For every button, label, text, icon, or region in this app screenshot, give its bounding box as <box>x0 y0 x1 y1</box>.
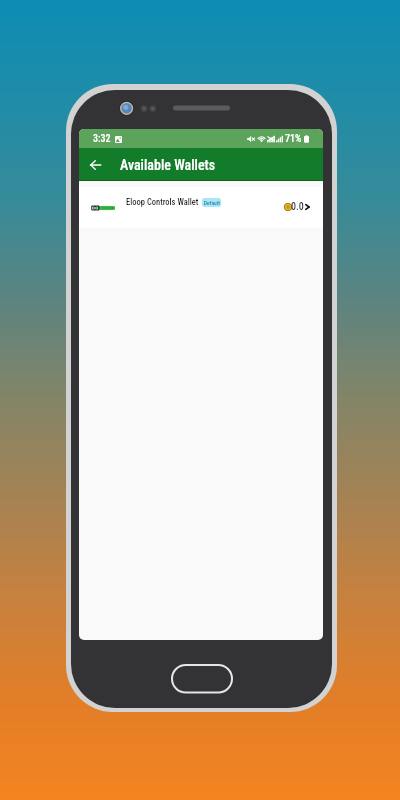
staticText: 0.0 <box>291 201 304 213</box>
staticText: Default <box>204 200 220 206</box>
staticText: Eloop Controls Wallet <box>126 197 199 207</box>
staticText: Available Wallets <box>120 157 216 173</box>
staticText: 71% <box>285 133 302 145</box>
button[interactable]: Eloop Controls Wallet <box>79 187 323 228</box>
button[interactable]: Back <box>84 154 106 176</box>
staticText: 3:32 <box>93 133 111 145</box>
